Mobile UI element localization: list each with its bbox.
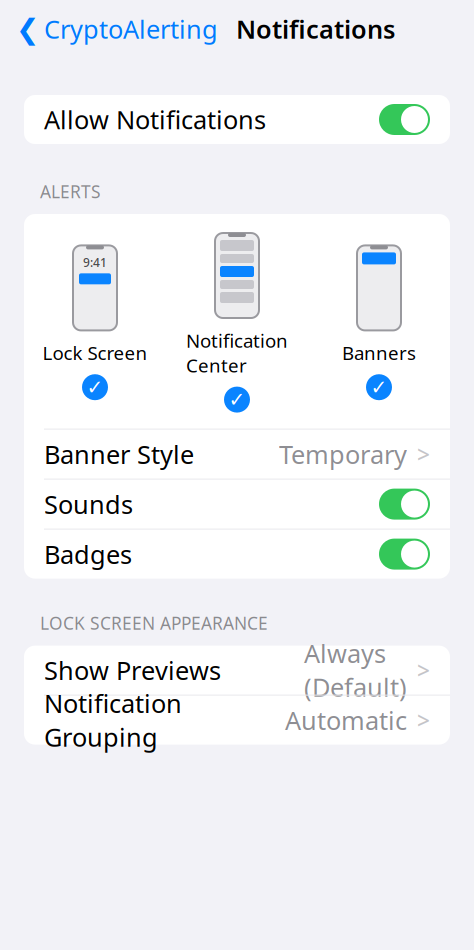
staticText: ✓ [228,388,245,411]
staticText: ✓ [370,376,387,399]
button[interactable]: Show Previews [24,646,450,695]
staticText: > [417,655,430,685]
staticText: Banners [342,340,416,365]
staticText: Notification Grouping [44,686,182,754]
staticText: ALERTS [40,180,101,203]
staticText: LOCK SCREEN APPEARANCE [40,612,268,635]
staticText: CryptoAlerting [44,12,218,46]
staticText: > [417,705,430,735]
button[interactable]: Badges [24,530,450,579]
staticText: Notification Center [186,328,288,378]
button[interactable]: Notification Grouping [24,696,450,745]
button[interactable]: Banner Style [24,430,450,479]
button[interactable]: Sounds [24,480,450,529]
staticText: Sounds [44,487,133,521]
staticText: Lock Screen [42,340,147,365]
staticText: 9:41 [83,254,107,270]
staticText: Notifications [236,12,395,46]
button[interactable]: Banners [308,244,450,400]
button[interactable]: Notification Center [166,232,308,413]
staticText: ❮ [16,13,39,45]
staticText: ✓ [86,376,103,399]
staticText: Allow Notifications [44,103,266,136]
button[interactable]: Allow Notifications [24,95,450,144]
staticText: Temporary [279,437,407,471]
button[interactable]: ❮ [16,12,218,46]
staticText: Show Previews [44,653,221,687]
staticText: Badges [44,537,132,571]
button[interactable]: 9:41 [24,244,166,400]
staticText: Automatic [285,703,407,737]
staticText: Banner Style [44,437,194,471]
staticText: Always (Default) [304,636,407,704]
staticText: > [417,439,430,469]
